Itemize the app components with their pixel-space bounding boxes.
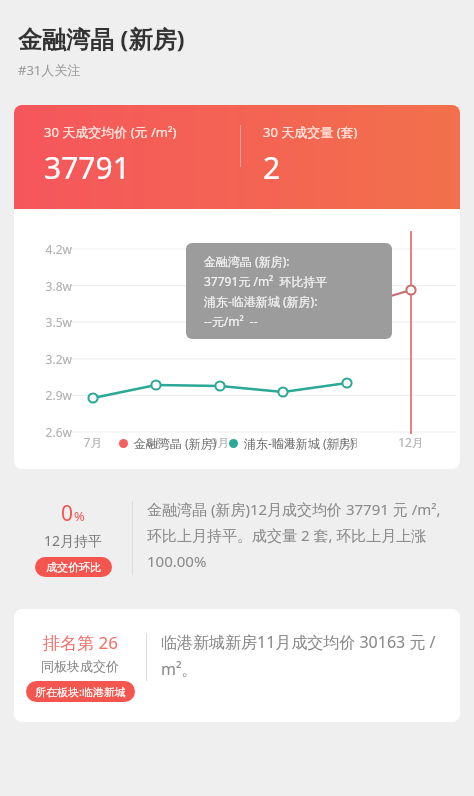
staticText: 4.2w [32, 241, 72, 257]
staticText: 金融湾晶 (新房) [18, 22, 185, 55]
staticText: 同板块成交价 [41, 658, 119, 674]
staticText: 0 [61, 499, 74, 528]
staticText: 浦东-临港新城 (新房): [204, 293, 318, 309]
staticText: 2.9w [32, 387, 72, 403]
button[interactable]: 排名第 26 [14, 609, 460, 722]
staticText: 30 天成交量 (套) [263, 123, 358, 141]
staticText: 所在板块:临港新城 [35, 684, 126, 699]
staticText: 30 天成交均价 (元 /m²) [44, 123, 177, 141]
staticText: 9月 [200, 434, 240, 450]
staticText: #31人关注 [18, 61, 81, 79]
staticText: 37791元 /m² 环比持平 [204, 273, 328, 289]
staticText: 临港新城新房11月成交均价 30163 元 /m²。 [161, 631, 452, 680]
staticText: 2 [263, 147, 281, 188]
staticText: 成交价环比 [46, 560, 101, 574]
staticText: --元/m² -- [204, 313, 258, 329]
staticText: 3.5w [32, 314, 72, 330]
staticText: 11月 [327, 434, 367, 450]
staticText: 金融湾晶 (新房)12月成交均价 37791 元 /m², 环比上月持平。成交量… [147, 499, 456, 571]
staticText: 10月 [263, 434, 303, 450]
staticText: 2.6w [32, 424, 72, 440]
staticText: 3.8w [32, 278, 72, 294]
staticText: 金融湾晶 (新房) [134, 435, 217, 451]
button[interactable]: 30 天成交均价 (元 /m²) [14, 105, 460, 469]
button[interactable]: 0 [14, 499, 460, 577]
staticText: 12月 [391, 434, 431, 450]
staticText: 排名第 26 [43, 631, 118, 654]
staticText: 7月 [73, 434, 113, 450]
staticText: % [74, 507, 85, 525]
staticText: 12月持平 [44, 531, 103, 550]
staticText: 金融湾晶 (新房): [204, 253, 290, 269]
staticText: 3.2w [32, 351, 72, 367]
staticText: 浦东-临港新城 (新房) [244, 435, 355, 451]
staticText: 37791 [44, 147, 130, 188]
staticText: 8月 [136, 434, 176, 450]
